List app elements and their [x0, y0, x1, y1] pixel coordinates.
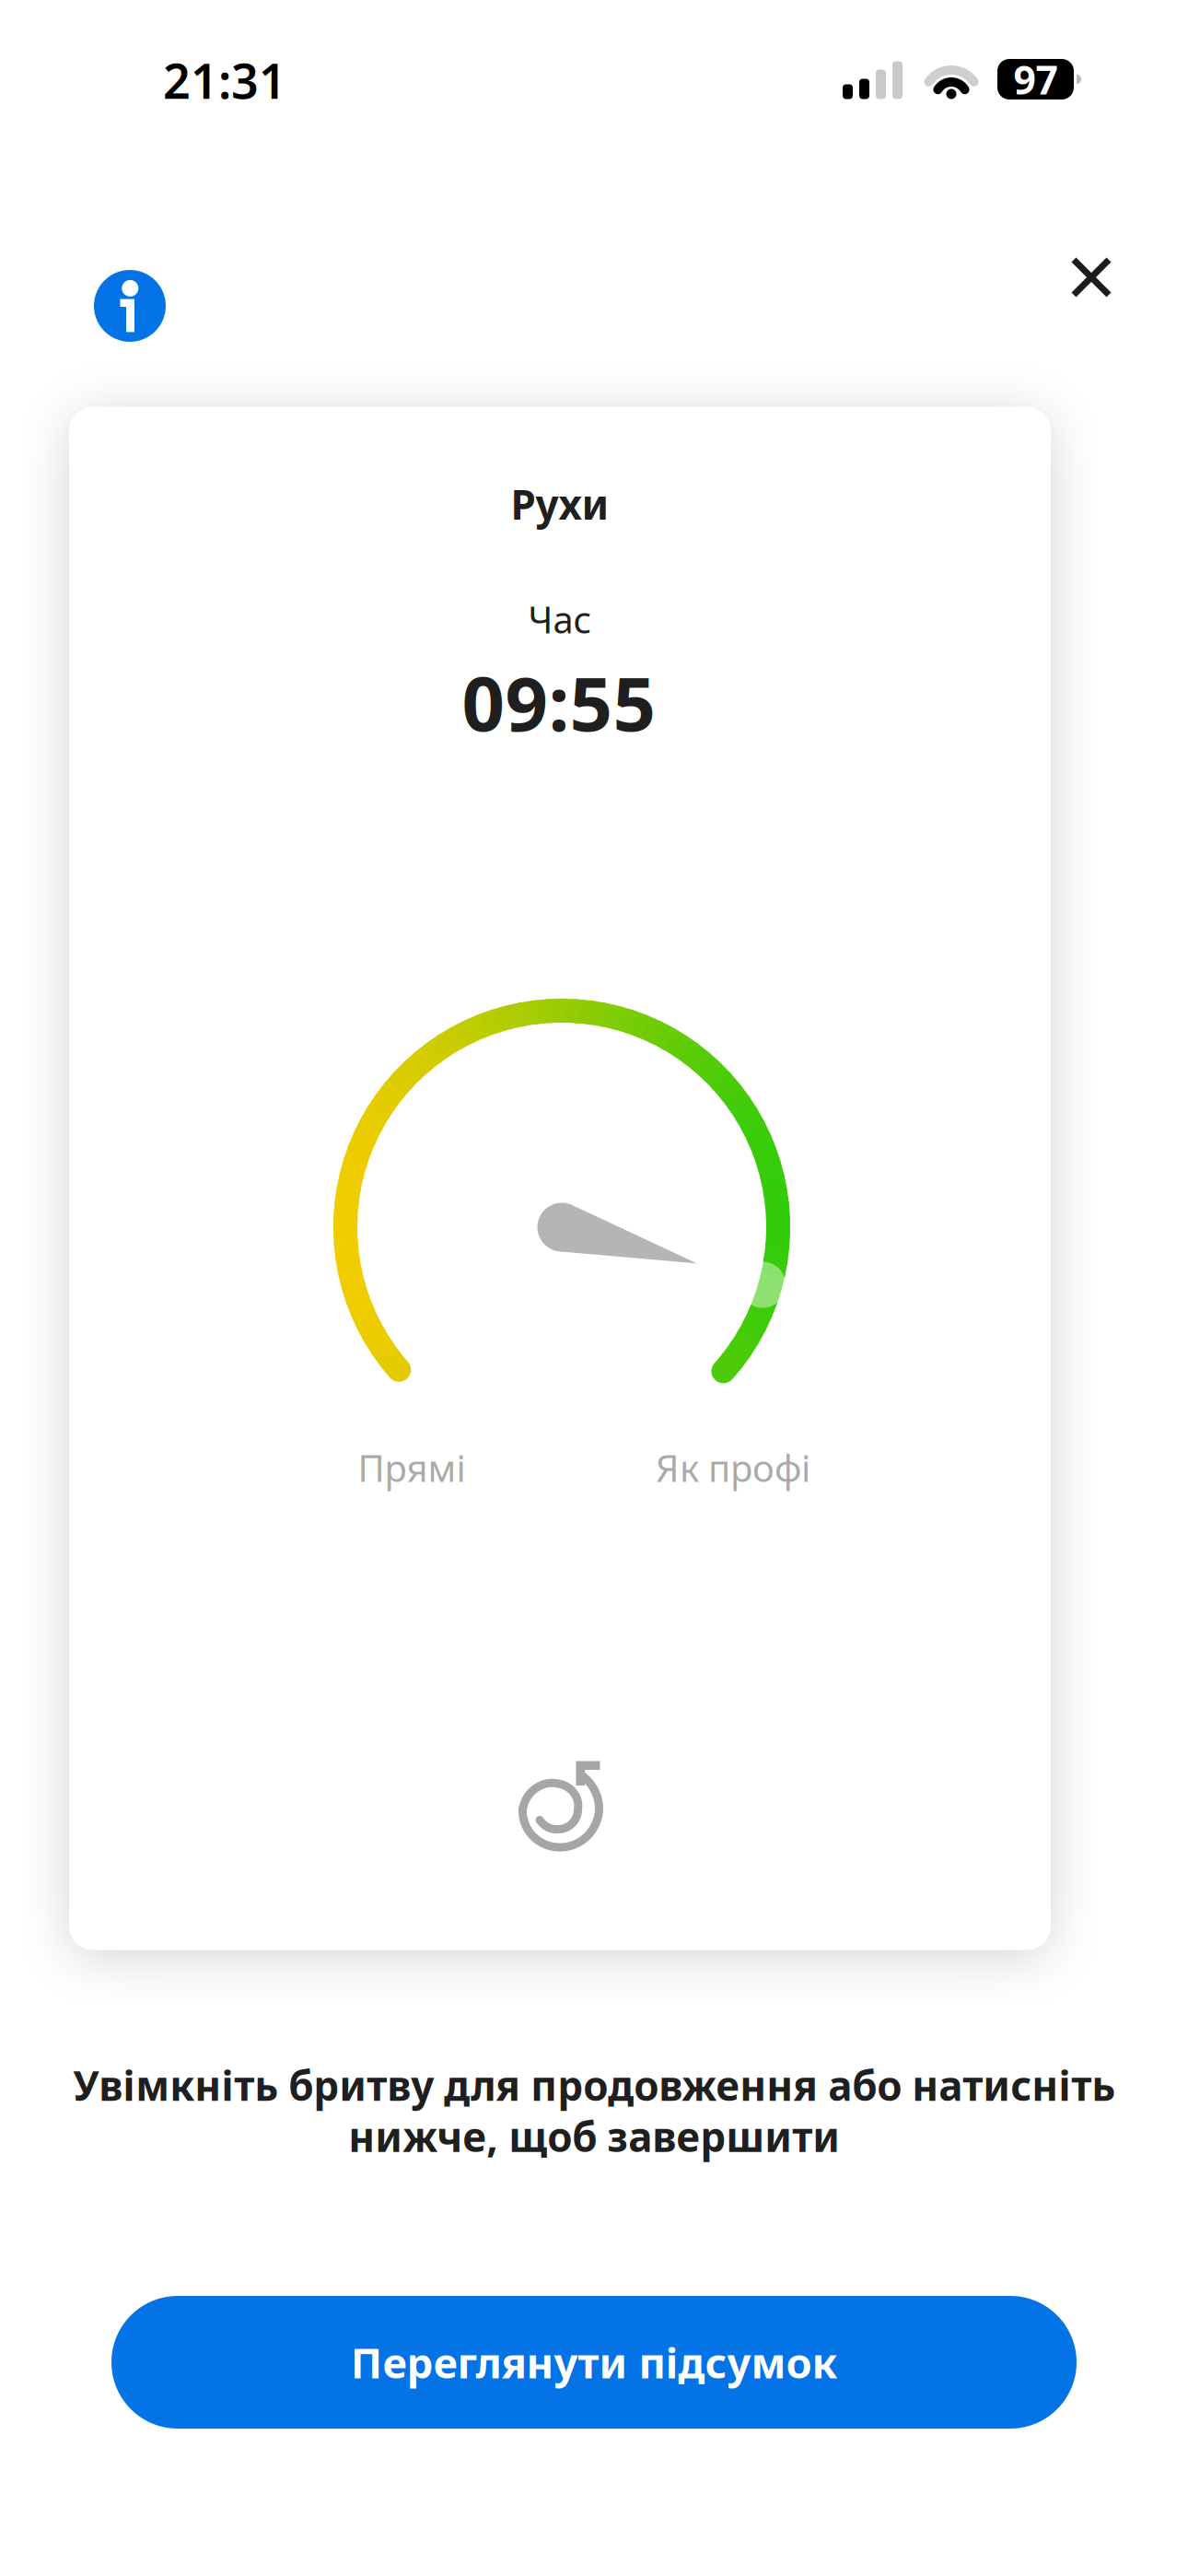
- staticText: 09:55: [462, 652, 656, 752]
- button[interactable]: Close: [1057, 243, 1125, 311]
- staticText: Рухи: [511, 477, 609, 531]
- button[interactable]: Information: [94, 270, 166, 342]
- staticText: 97: [1013, 53, 1058, 105]
- staticText: 21:31: [163, 48, 286, 112]
- staticText: Увімкніть бритву для продовження або нат…: [73, 2058, 1115, 2163]
- staticText: Час: [528, 595, 592, 644]
- staticText: Як профі: [656, 1443, 810, 1492]
- staticText: Прямі: [358, 1443, 466, 1492]
- button[interactable]: Переглянути підсумок: [111, 2296, 1077, 2429]
- staticText: Переглянути підсумок: [350, 2335, 838, 2390]
